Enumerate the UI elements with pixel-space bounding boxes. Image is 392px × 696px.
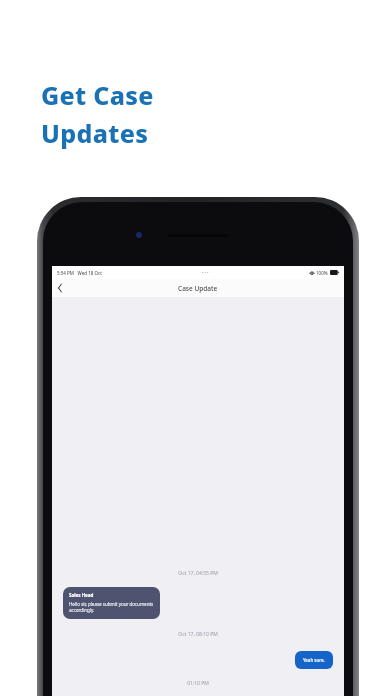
staticText: Case Update (178, 284, 218, 293)
staticText: Yeah sure. (303, 657, 325, 663)
staticText: Hello sir, please submit your documents … (69, 601, 154, 614)
staticText: 100% (316, 270, 328, 276)
staticText: 01:10 PM (52, 680, 344, 687)
staticText: Oct 17, 04:55 PM (52, 570, 344, 577)
button[interactable]: Back (52, 280, 68, 296)
staticText: Updates (41, 116, 149, 150)
button[interactable]: Sales Head (63, 587, 160, 619)
staticText: Get Case (41, 78, 154, 112)
staticText: 5:54 PM Wed 18 Oct (57, 270, 102, 276)
staticText: Oct 17, 08:10 PM (52, 631, 344, 638)
staticText: Sales Head (69, 592, 94, 598)
staticText: • • • (202, 270, 209, 275)
button[interactable]: Yeah sure. (295, 651, 333, 669)
